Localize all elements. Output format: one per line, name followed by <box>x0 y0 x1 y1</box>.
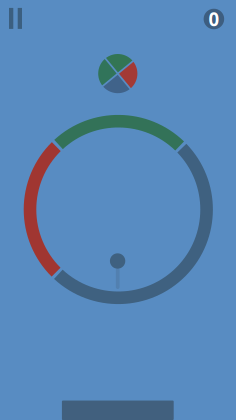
button[interactable]: Pause <box>0 3 30 33</box>
staticText: 0 <box>208 7 219 31</box>
